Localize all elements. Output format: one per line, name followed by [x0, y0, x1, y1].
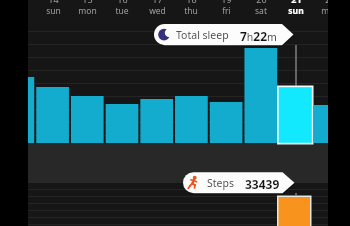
staticText: thu [184, 5, 198, 17]
staticText: 17 [152, 0, 163, 5]
button[interactable] [70, 48, 104, 143]
button[interactable]: wed [140, 5, 174, 17]
staticText: sat [255, 5, 267, 17]
button[interactable] [277, 195, 312, 226]
button[interactable] [174, 48, 208, 143]
staticText: 14 [48, 0, 59, 5]
button[interactable] [244, 48, 278, 143]
staticText: 18 [186, 0, 197, 5]
button[interactable] [279, 48, 313, 143]
staticText: 22 [325, 0, 336, 5]
button[interactable] [36, 48, 70, 143]
button[interactable] [140, 48, 174, 143]
button[interactable]: thu [174, 5, 208, 17]
staticText: 15 [82, 0, 93, 5]
button[interactable] [209, 48, 243, 143]
staticText: 7h22m [240, 28, 277, 44]
staticText: 33439 [245, 176, 280, 192]
button[interactable]: Steps [183, 172, 295, 193]
button[interactable] [105, 48, 139, 143]
staticText: Steps [207, 176, 234, 190]
staticText: mon [321, 5, 340, 17]
staticText: Total sleep [176, 28, 229, 42]
staticText: wed [149, 5, 166, 17]
staticText: fri [222, 5, 231, 17]
button[interactable]: mon [70, 5, 104, 17]
staticText: tue [115, 5, 129, 17]
button[interactable]: Total sleep [154, 24, 294, 45]
button[interactable]: sun [279, 5, 313, 17]
button[interactable]: tue [105, 5, 139, 17]
staticText: 21 [291, 0, 302, 5]
button[interactable]: fri [209, 5, 243, 17]
button[interactable]: mon [313, 5, 347, 17]
staticText: 19 [221, 0, 232, 5]
staticText: sun [288, 5, 304, 17]
staticText: sun [46, 5, 61, 17]
staticText: 16 [117, 0, 128, 5]
button[interactable]: sat [244, 5, 278, 17]
staticText: mon [78, 5, 97, 17]
staticText: 20 [256, 0, 267, 5]
button[interactable]: sun [36, 5, 70, 17]
